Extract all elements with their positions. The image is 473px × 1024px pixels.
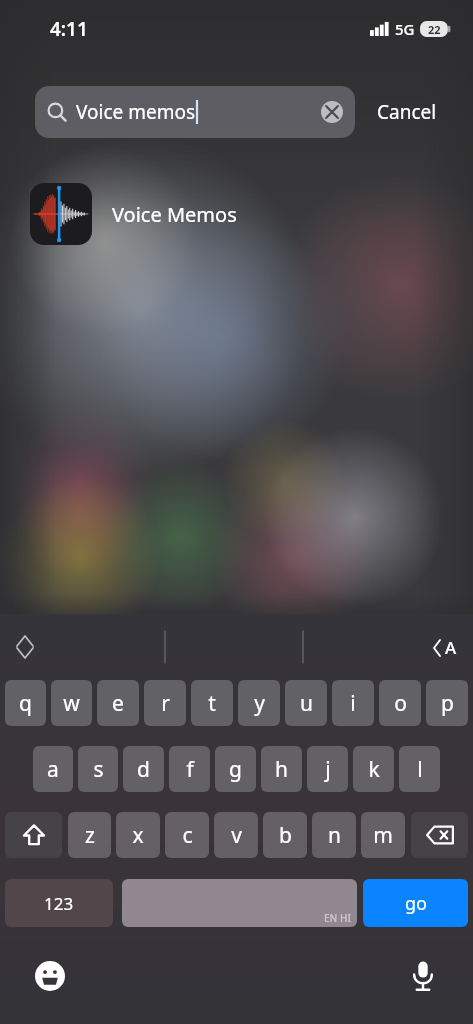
button[interactable]: g	[215, 746, 256, 792]
staticText: y	[254, 689, 265, 718]
button[interactable]: p	[426, 680, 468, 726]
staticText: v	[231, 821, 242, 850]
button[interactable]: a	[33, 746, 73, 792]
button[interactable]: Shift	[5, 812, 62, 858]
staticText: a	[47, 755, 59, 784]
button[interactable]: o	[379, 680, 421, 726]
staticText: z	[85, 821, 95, 850]
staticText: x	[132, 821, 144, 850]
button[interactable]: w	[51, 680, 92, 726]
button[interactable]: s	[78, 746, 118, 792]
staticText: b	[279, 821, 292, 850]
staticText: Cancel	[377, 99, 437, 125]
staticText: m	[373, 821, 393, 850]
staticText: e	[112, 689, 124, 718]
staticText: c	[182, 821, 193, 850]
staticText: d	[137, 755, 150, 784]
staticText: go	[405, 891, 427, 916]
button[interactable]: Space	[122, 879, 357, 927]
staticText: g	[229, 755, 242, 784]
button[interactable]: e	[97, 680, 139, 726]
button[interactable]: m	[361, 812, 405, 858]
staticText: l	[417, 755, 423, 784]
button[interactable]: Keyboard settings	[429, 632, 461, 663]
staticText: A	[445, 636, 457, 659]
staticText: 5G	[395, 19, 415, 39]
staticText: k	[368, 755, 380, 784]
button[interactable]: k	[353, 746, 394, 792]
button[interactable]: z	[68, 812, 111, 858]
staticText: q	[19, 689, 32, 718]
button[interactable]: b	[263, 812, 307, 858]
staticText: p	[441, 689, 454, 718]
button[interactable]: q	[5, 680, 46, 726]
button[interactable]: Voice Memos	[0, 178, 473, 250]
button[interactable]: y	[238, 680, 280, 726]
staticText: h	[275, 755, 288, 784]
staticText: f	[186, 755, 194, 784]
button[interactable]: Emoji	[30, 956, 70, 996]
button[interactable]: c	[165, 812, 209, 858]
button[interactable]: t	[191, 680, 233, 726]
button[interactable]: Clear text	[321, 101, 343, 123]
button[interactable]: r	[144, 680, 186, 726]
button[interactable]: h	[261, 746, 302, 792]
staticText: Voice Memos	[112, 201, 237, 228]
button[interactable]: l	[399, 746, 440, 792]
staticText: n	[328, 821, 341, 850]
staticText: 22	[428, 22, 441, 37]
button[interactable]: f	[169, 746, 210, 792]
staticText: w	[63, 689, 80, 718]
staticText: Voice memos	[76, 99, 196, 125]
staticText: u	[300, 689, 313, 718]
button[interactable]: i	[332, 680, 374, 726]
button[interactable]: x	[116, 812, 160, 858]
staticText: r	[161, 689, 170, 718]
button[interactable]: Delete	[411, 812, 468, 858]
staticText: 4:11	[50, 16, 88, 42]
button[interactable]: Voice input	[403, 956, 443, 996]
button[interactable]: go	[363, 879, 468, 927]
staticText: o	[394, 689, 407, 718]
staticText: t	[208, 689, 216, 718]
button[interactable]: u	[285, 680, 327, 726]
staticText: EN HI	[324, 911, 351, 925]
button[interactable]: d	[123, 746, 164, 792]
staticText: i	[350, 689, 356, 718]
staticText: j	[325, 755, 331, 784]
button[interactable]: Expand suggestions	[8, 630, 42, 664]
button[interactable]: Cancel	[373, 95, 441, 129]
button[interactable]: j	[307, 746, 348, 792]
staticText: 123	[44, 892, 74, 915]
button[interactable]: n	[312, 812, 356, 858]
staticText: s	[93, 755, 104, 784]
button[interactable]: v	[214, 812, 258, 858]
button[interactable]: Voice memos	[35, 86, 355, 138]
button[interactable]: 123	[5, 879, 113, 927]
